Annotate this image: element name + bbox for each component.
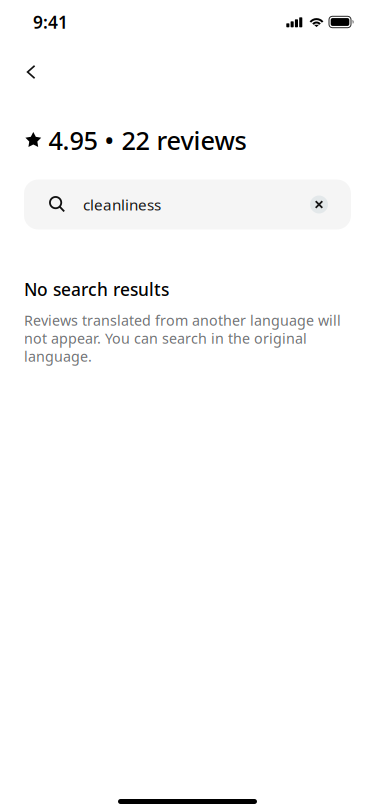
staticText: cleanliness [83,194,161,215]
staticText: No search results [24,277,169,301]
staticText: not appear. You can search in the origin… [24,328,307,348]
button[interactable]: Clear search [304,189,334,219]
button[interactable]: Back [14,53,48,91]
staticText: Reviews translated from another language… [24,310,341,330]
staticText: 4.95 • 22 reviews [49,123,247,157]
staticText: 9:41 [33,10,68,34]
staticText: language. [24,346,92,366]
button[interactable]: cleanliness [24,179,351,229]
